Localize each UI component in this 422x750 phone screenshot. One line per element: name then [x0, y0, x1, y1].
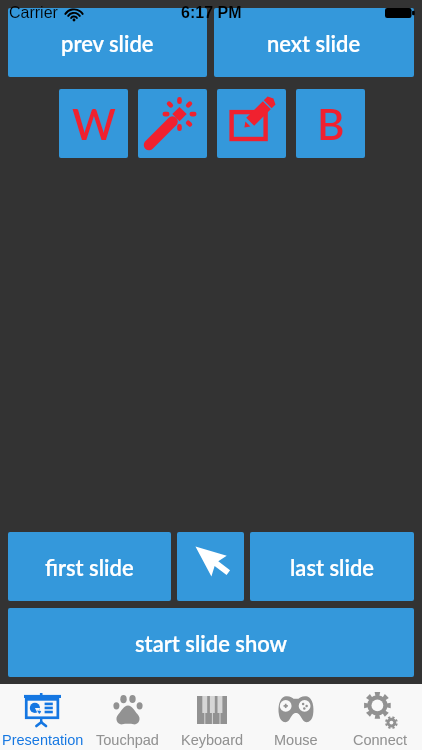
- button[interactable]: Keyboard: [170, 684, 254, 750]
- staticText: prev slide: [61, 30, 154, 56]
- button[interactable]: last slide: [250, 532, 414, 601]
- staticText: next slide: [267, 30, 361, 56]
- staticText: last slide: [290, 554, 374, 580]
- button[interactable]: Mouse: [254, 684, 338, 750]
- staticText: Presentation: [2, 732, 84, 748]
- button[interactable]: Annotate slide: [217, 89, 286, 158]
- staticText: Connect: [353, 732, 408, 748]
- staticText: Keyboard: [181, 732, 244, 748]
- staticText: Mouse: [274, 732, 318, 748]
- button[interactable]: prev slide: [8, 8, 207, 77]
- staticText: W: [72, 99, 116, 149]
- button[interactable]: Connect: [338, 684, 422, 750]
- staticText: Carrier: [9, 4, 58, 22]
- button[interactable]: Presentation: [0, 684, 85, 750]
- staticText: first slide: [45, 554, 134, 580]
- button[interactable]: start slide show: [8, 608, 414, 677]
- button[interactable]: B: [296, 89, 365, 158]
- button[interactable]: W: [59, 89, 128, 158]
- button[interactable]: White screen toggle: [138, 89, 207, 158]
- staticText: 6:17 PM: [181, 4, 242, 22]
- staticText: start slide show: [135, 630, 288, 656]
- button[interactable]: Touchpad: [85, 684, 170, 750]
- staticText: Touchpad: [96, 732, 159, 748]
- button[interactable]: next slide: [214, 8, 414, 77]
- button[interactable]: Laser pointer: [177, 532, 244, 601]
- button[interactable]: first slide: [8, 532, 171, 601]
- staticText: B: [317, 99, 345, 149]
